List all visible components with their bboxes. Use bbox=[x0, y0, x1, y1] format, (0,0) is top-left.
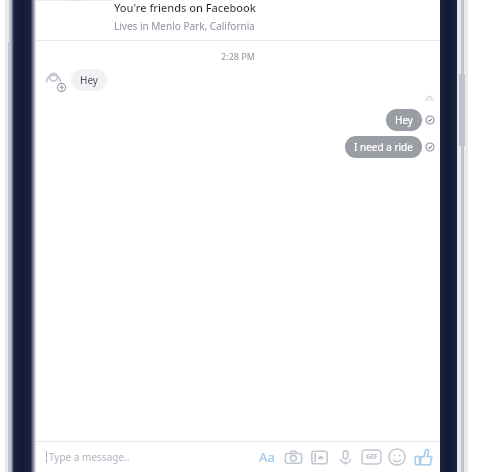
button[interactable]: Hey bbox=[386, 109, 422, 131]
staticText: You're friends on Facebook bbox=[114, 0, 256, 15]
staticText: Lives in Menlo Park, California bbox=[114, 19, 255, 33]
button[interactable]: Voice message bbox=[332, 444, 358, 470]
button[interactable]: GIF bbox=[358, 444, 384, 470]
staticText: Type a message.. bbox=[49, 450, 130, 464]
button[interactable]: I need a ride bbox=[345, 136, 422, 158]
button[interactable]: Hey bbox=[71, 69, 107, 91]
button[interactable]: Type a message.. bbox=[46, 450, 254, 464]
staticText: Hey bbox=[395, 113, 413, 127]
button[interactable]: Photo gallery bbox=[306, 444, 332, 470]
button[interactable]: Text formatting bbox=[254, 444, 280, 470]
staticText: I need a ride bbox=[354, 140, 413, 154]
staticText: Hey bbox=[80, 73, 98, 87]
staticText: GIF bbox=[366, 452, 378, 462]
staticText: Aa bbox=[259, 448, 275, 466]
staticText: 2:28 PM bbox=[221, 50, 255, 62]
button[interactable]: Send a like bbox=[410, 444, 436, 470]
button[interactable]: Camera bbox=[280, 444, 306, 470]
button[interactable]: Emoji bbox=[384, 444, 410, 470]
